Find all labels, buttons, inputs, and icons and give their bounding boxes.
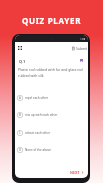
button[interactable]: B [15,106,88,124]
button[interactable]: C [15,124,88,142]
staticText: NEXT [70,170,80,175]
staticText: C [19,131,21,135]
staticText: D [19,148,22,152]
button[interactable]: NEXT [68,168,86,177]
staticText: repel each other [25,96,49,100]
button[interactable]: Submit [71,44,88,52]
button[interactable]: Bookmark [78,57,84,63]
staticText: A [19,96,21,100]
staticText: mix up with each other [25,113,58,117]
staticText: B [19,113,21,117]
staticText: QUIZ PLAYER [22,15,82,26]
staticText: Submit [76,46,88,51]
staticText: Plastic rod rubbed with fur and glass ro… [18,67,87,78]
staticText: Q.1 [19,59,26,64]
staticText: attract each other [25,131,51,135]
button[interactable]: Menu [16,44,24,52]
button[interactable]: D [15,141,88,159]
button[interactable]: A [15,89,88,107]
staticText: None of the above [25,148,51,152]
